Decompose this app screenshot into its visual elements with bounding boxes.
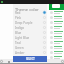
staticText: Amber bbox=[15, 51, 25, 55]
button[interactable]: SELECT bbox=[13, 56, 47, 62]
staticText: SELECT bbox=[26, 57, 35, 61]
staticText: Blue bbox=[15, 31, 22, 35]
button[interactable]: Green bbox=[13, 45, 47, 50]
button[interactable] bbox=[50, 20, 64, 25]
staticText: Teal bbox=[15, 41, 21, 45]
staticText: Indigo bbox=[15, 26, 25, 30]
button[interactable]: Indigo bbox=[13, 25, 47, 30]
staticText: Red bbox=[15, 11, 21, 15]
button[interactable] bbox=[50, 55, 64, 60]
button[interactable] bbox=[50, 40, 64, 45]
button[interactable]: Blue bbox=[13, 30, 47, 35]
button[interactable]: Grey bbox=[13, 55, 47, 60]
button[interactable]: Amber bbox=[13, 50, 47, 55]
button[interactable]: Back bbox=[0, 60, 3, 63]
button[interactable] bbox=[50, 30, 64, 35]
staticText: Theme color bbox=[15, 7, 39, 12]
button[interactable] bbox=[50, 10, 64, 15]
staticText: Green bbox=[15, 46, 24, 50]
button[interactable] bbox=[50, 45, 64, 50]
button[interactable] bbox=[50, 50, 64, 55]
button[interactable] bbox=[50, 15, 64, 20]
button[interactable]: Light Blue bbox=[13, 35, 47, 40]
button[interactable] bbox=[50, 60, 64, 64]
button[interactable]: Teal bbox=[13, 40, 47, 45]
button[interactable]: Deep Purple bbox=[13, 20, 47, 25]
staticText: Pink bbox=[15, 16, 22, 20]
button[interactable] bbox=[50, 25, 64, 30]
staticText: Light Blue bbox=[15, 36, 30, 40]
button[interactable]: Red bbox=[13, 10, 47, 15]
button[interactable]: Pink bbox=[13, 15, 47, 20]
button[interactable]: Home bbox=[61, 60, 64, 63]
button[interactable] bbox=[50, 35, 64, 40]
staticText: Deep Purple bbox=[15, 21, 33, 25]
